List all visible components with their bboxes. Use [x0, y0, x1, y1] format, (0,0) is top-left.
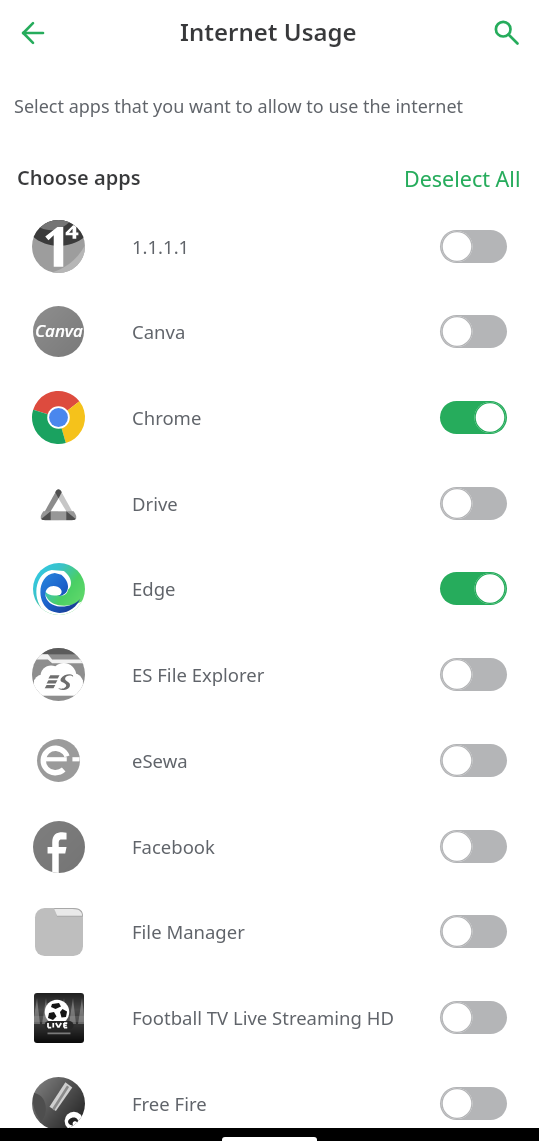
- button[interactable]: Free Fire: [0, 1060, 539, 1141]
- button[interactable]: Edge: [0, 545, 539, 631]
- button[interactable]: File Manager: [0, 888, 539, 974]
- button[interactable]: Disabled: [440, 1001, 507, 1034]
- staticText: File Manager: [132, 919, 245, 944]
- button[interactable]: Facebook: [0, 803, 539, 889]
- staticText: Drive: [132, 491, 178, 516]
- button[interactable]: ES File Explorer: [0, 631, 539, 717]
- staticText: Canva: [132, 319, 186, 344]
- button[interactable]: Enabled: [440, 401, 507, 434]
- button[interactable]: Deselect All: [400, 159, 525, 198]
- button[interactable]: Disabled: [440, 915, 507, 948]
- button[interactable]: eSewa: [0, 717, 539, 803]
- staticText: Free Fire: [132, 1091, 207, 1116]
- staticText: Chrome: [132, 405, 202, 430]
- button[interactable]: Disabled: [440, 487, 507, 520]
- staticText: Facebook: [132, 834, 215, 859]
- button[interactable]: Disabled: [440, 1087, 507, 1120]
- staticText: Select apps that you want to allow to us…: [14, 94, 464, 119]
- staticText: Edge: [132, 576, 176, 601]
- staticText: Choose apps: [17, 164, 141, 191]
- button[interactable]: Back: [11, 11, 54, 54]
- staticText: eSewa: [132, 748, 188, 773]
- staticText: Football TV Live Streaming HD: [132, 1005, 394, 1030]
- button[interactable]: Disabled: [440, 315, 507, 348]
- button[interactable]: Enabled: [440, 572, 507, 605]
- button[interactable]: Chrome: [0, 374, 539, 460]
- button[interactable]: Disabled: [440, 744, 507, 777]
- button[interactable]: 1.1.1.1: [0, 203, 539, 289]
- button[interactable]: Search: [484, 9, 528, 53]
- staticText: ES File Explorer: [132, 662, 265, 687]
- staticText: 1.1.1.1: [132, 234, 190, 259]
- staticText: Internet Usage: [180, 15, 357, 48]
- button[interactable]: Disabled: [440, 230, 507, 263]
- button[interactable]: Canva: [0, 288, 539, 374]
- button[interactable]: Drive: [0, 460, 539, 546]
- button[interactable]: Disabled: [440, 830, 507, 863]
- button[interactable]: Disabled: [440, 658, 507, 691]
- button[interactable]: Football TV Live Streaming HD: [0, 974, 539, 1060]
- staticText: Canva: [35, 319, 83, 342]
- staticText: Deselect All: [404, 164, 521, 193]
